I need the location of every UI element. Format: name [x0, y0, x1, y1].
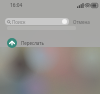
button[interactable]: Отмена	[73, 19, 90, 25]
staticText: 16:04	[10, 2, 23, 9]
staticText: Переслать	[21, 40, 44, 46]
button[interactable]: Поиск	[5, 18, 69, 25]
button[interactable]: Переслать	[0, 0, 100, 56]
staticText: Поиск	[12, 19, 26, 25]
button[interactable]: Clear text	[62, 19, 67, 24]
staticText: Отмена	[73, 19, 90, 25]
